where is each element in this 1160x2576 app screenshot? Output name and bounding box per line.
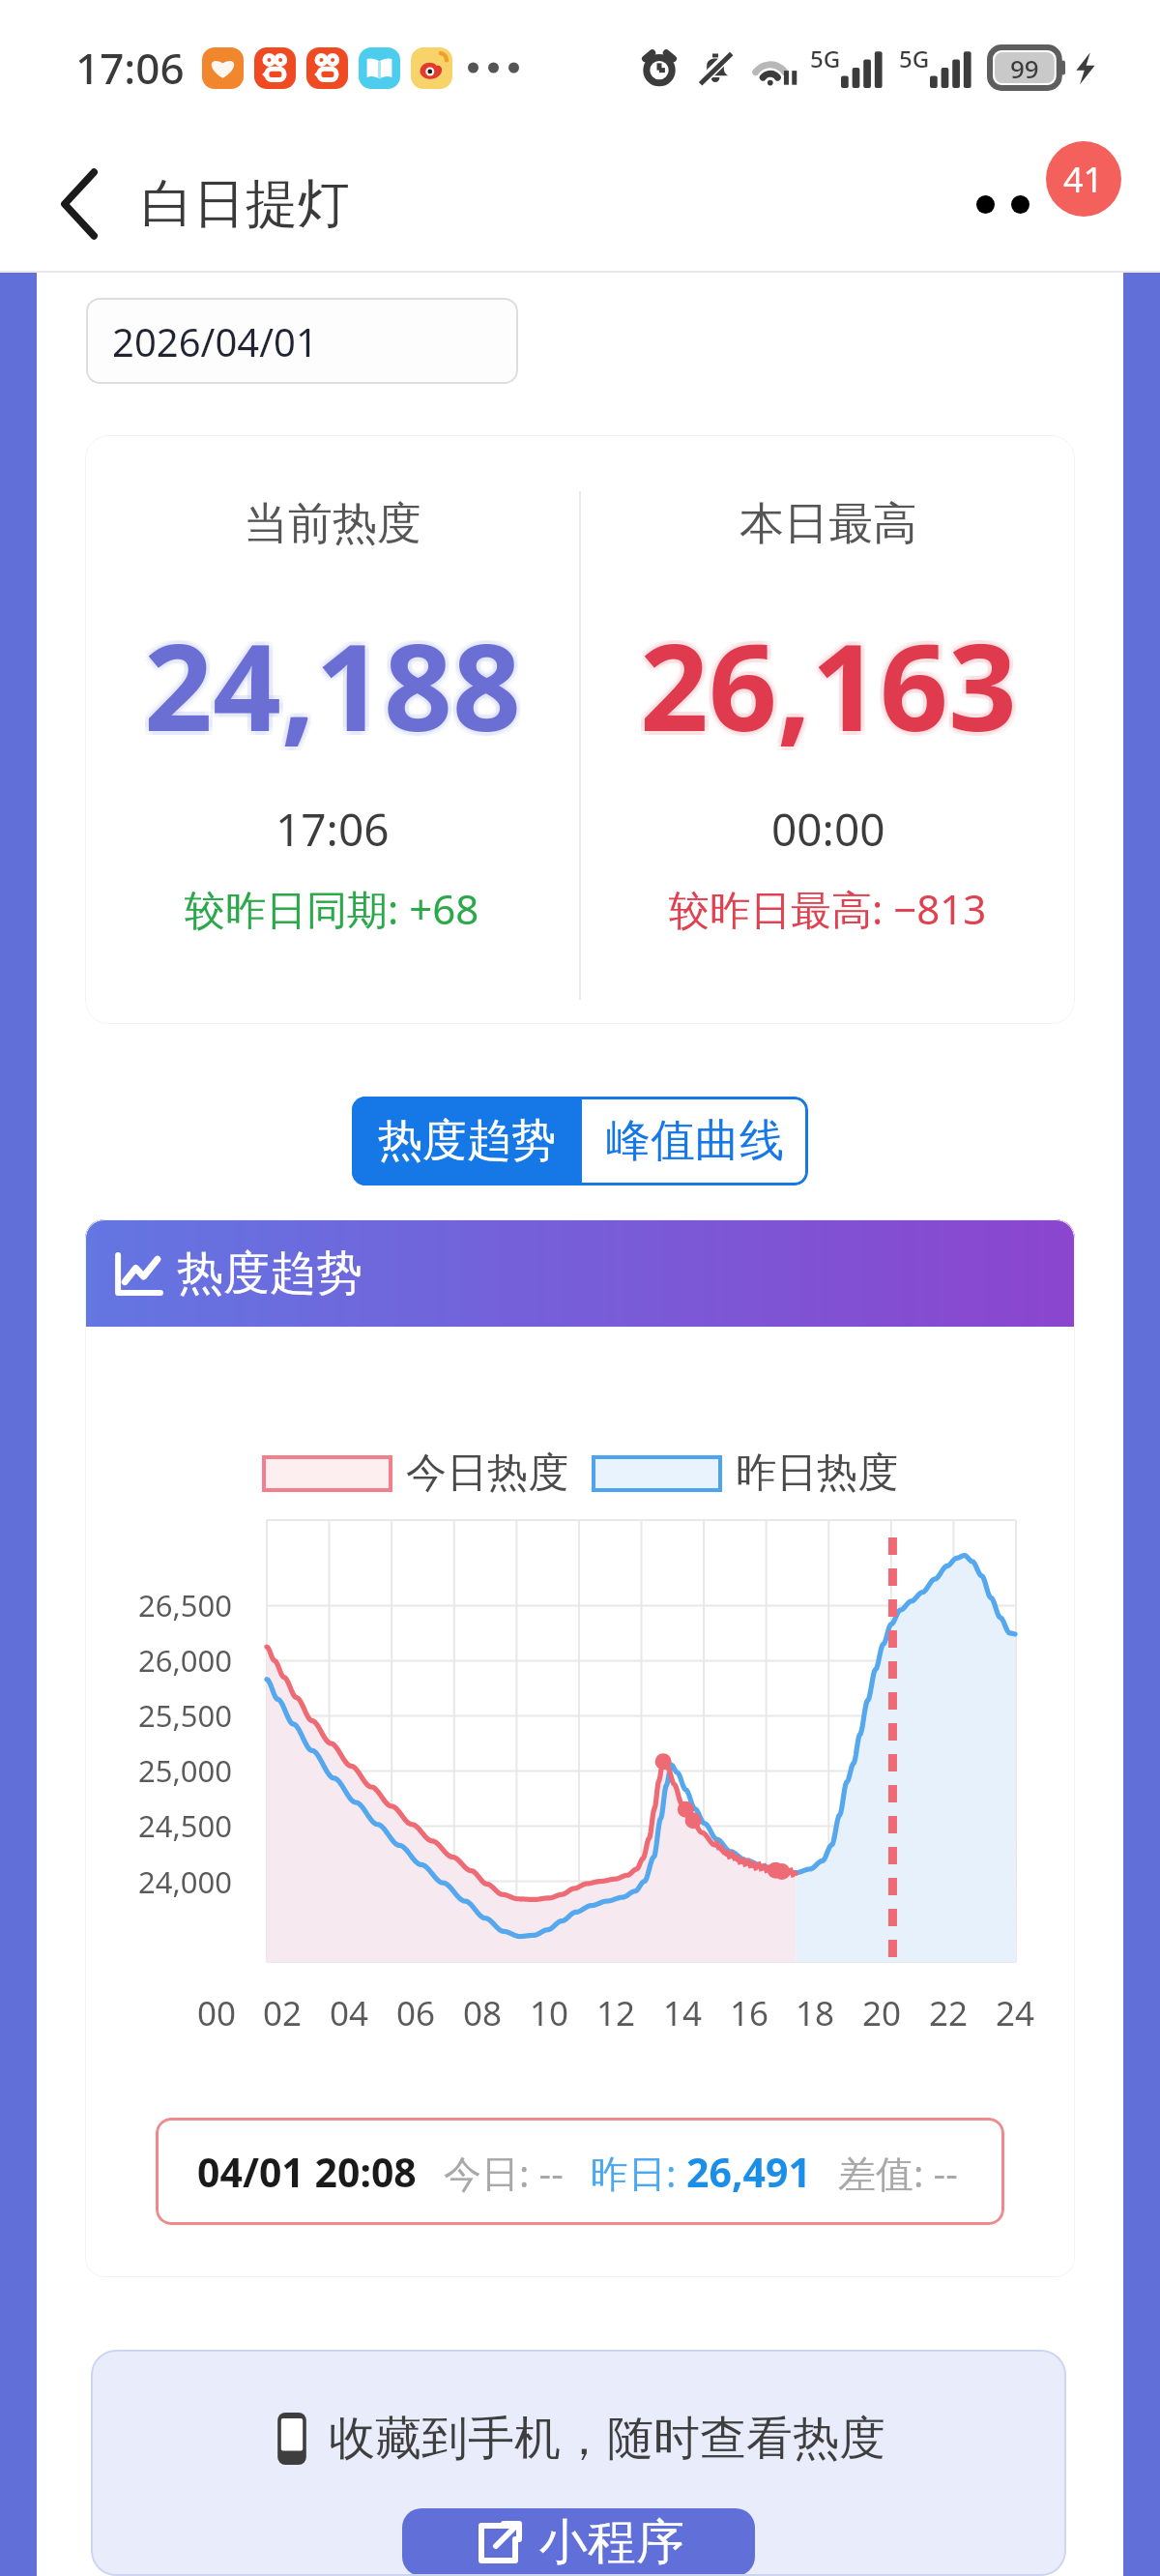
staticText: 较昨日最高: −813 [669, 881, 987, 936]
staticText: 26,491 [686, 2145, 811, 2199]
staticText: 24 [996, 1990, 1035, 2036]
staticText: 24,188 [148, 599, 525, 762]
staticText: 24,188 [144, 599, 521, 762]
staticText: 今日热度 [406, 1448, 568, 1499]
staticText: 41 [1063, 156, 1104, 203]
staticText: 17:06 [75, 39, 185, 97]
staticText: 26,163 [644, 602, 1021, 766]
button[interactable]: More options [949, 163, 1056, 245]
staticText: 峰值曲线 [606, 1113, 784, 1169]
staticText: 白日提灯 [141, 171, 350, 237]
staticText: 小程序 [539, 2512, 684, 2573]
staticText: 当前热度 [244, 496, 421, 552]
staticText: 14 [663, 1990, 703, 2036]
staticText: 25,500 [138, 1695, 232, 1736]
staticText: 26,163 [636, 599, 1013, 762]
staticText: 26,000 [138, 1640, 232, 1681]
staticText: 差值: -- [838, 2147, 958, 2198]
staticText: 5G [810, 43, 841, 74]
button[interactable]: 2026/04/01 [86, 298, 518, 384]
staticText: 24,188 [144, 602, 521, 766]
staticText: 22 [929, 1990, 969, 2036]
staticText: 02 [263, 1990, 303, 2036]
staticText: 18 [796, 1990, 835, 2036]
button[interactable]: 峰值曲线 [582, 1097, 808, 1186]
staticText: 26,163 [640, 606, 1017, 770]
button[interactable]: 热度趋势 [352, 1097, 582, 1186]
staticText: 26,163 [644, 606, 1021, 770]
staticText: 较昨日同期: +68 [185, 881, 479, 936]
staticText: 26,163 [644, 599, 1021, 762]
staticText: 26,500 [138, 1585, 232, 1625]
staticText: 24,188 [140, 606, 517, 770]
staticText: 04/01 20:08 [197, 2145, 417, 2199]
staticText: 26,163 [636, 606, 1013, 770]
staticText: 26,163 [636, 602, 1013, 766]
staticText: 17:06 [275, 799, 390, 860]
staticText: 今日: -- [444, 2147, 564, 2198]
staticText: 24,188 [140, 602, 517, 766]
staticText: 99 [1010, 51, 1039, 85]
staticText: 2026/04/01 [112, 315, 318, 367]
staticText: 12 [596, 1990, 636, 2036]
staticText: 25,000 [138, 1750, 232, 1791]
staticText: 昨日热度 [736, 1448, 898, 1499]
staticText: 24,188 [144, 606, 521, 770]
staticText: 热度趋势 [378, 1113, 556, 1169]
staticText: 热度趋势 [177, 1244, 362, 1303]
staticText: 24,000 [138, 1861, 232, 1902]
staticText: 00:00 [771, 799, 885, 860]
staticText: 本日最高 [739, 496, 917, 552]
staticText: 收藏到手机，随时查看热度 [329, 2410, 885, 2468]
staticText: 24,188 [148, 602, 525, 766]
button[interactable]: 小程序 [402, 2508, 755, 2576]
staticText: 24,188 [148, 606, 525, 770]
staticText: 08 [463, 1990, 503, 2036]
staticText: 10 [530, 1990, 569, 2036]
staticText: 04 [330, 1990, 369, 2036]
staticText: 昨日: [591, 2147, 686, 2198]
staticText: 20 [862, 1990, 902, 2036]
staticText: 16 [730, 1990, 769, 2036]
staticText: 24,188 [140, 599, 517, 762]
staticText: 5G [899, 43, 930, 74]
staticText: 26,163 [640, 599, 1017, 762]
button[interactable]: Back [35, 160, 124, 249]
staticText: 24,500 [138, 1805, 232, 1846]
staticText: 26,163 [640, 602, 1017, 766]
staticText: 00 [197, 1990, 237, 2036]
staticText: 06 [396, 1990, 436, 2036]
